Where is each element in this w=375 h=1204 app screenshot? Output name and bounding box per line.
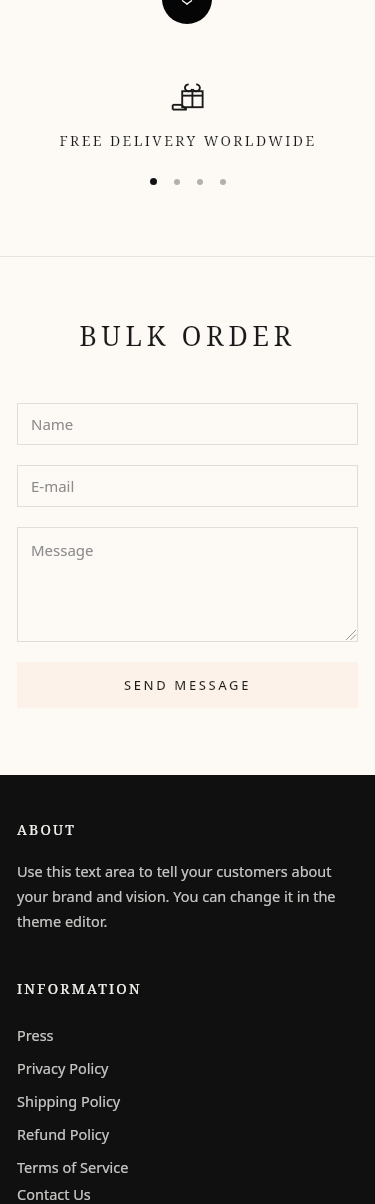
button[interactable]: Name — [17, 403, 358, 445]
staticText: ABOUT — [17, 820, 77, 839]
button[interactable]: Shipping Policy — [17, 1084, 358, 1117]
staticText: BULK ORDER — [0, 317, 375, 354]
button[interactable]: Scroll down — [162, 0, 212, 24]
staticText: Refund Policy — [17, 1124, 110, 1144]
staticText: Terms of Service — [17, 1157, 129, 1177]
button[interactable]: Privacy Policy — [17, 1051, 358, 1084]
button[interactable]: Contact Us — [17, 1183, 358, 1204]
button[interactable]: Terms of Service — [17, 1150, 358, 1183]
button[interactable]: Message — [17, 527, 358, 642]
button[interactable]: Slide — [220, 179, 226, 185]
staticText: FREE DELIVERY WORLDWIDE — [59, 131, 317, 150]
button[interactable]: SEND MESSAGE — [17, 662, 358, 708]
staticText: E-mail — [31, 476, 75, 496]
staticText: Use this text area to tell your customer… — [17, 861, 358, 931]
button[interactable]: Slide — [150, 178, 157, 185]
staticText: Press — [17, 1025, 54, 1045]
staticText: SEND MESSAGE — [124, 676, 251, 694]
staticText: Name — [31, 414, 74, 434]
staticText: INFORMATION — [17, 979, 142, 998]
staticText: Shipping Policy — [17, 1091, 121, 1111]
button[interactable]: Slide — [174, 179, 180, 185]
other: Free delivery — [171, 80, 205, 114]
button[interactable]: E-mail — [17, 465, 358, 507]
staticText: Contact Us — [17, 1184, 91, 1204]
button[interactable]: Press — [17, 1018, 358, 1051]
staticText: Privacy Policy — [17, 1058, 109, 1078]
button[interactable]: Refund Policy — [17, 1117, 358, 1150]
button[interactable]: Slide — [197, 179, 203, 185]
staticText: Message — [31, 540, 94, 560]
